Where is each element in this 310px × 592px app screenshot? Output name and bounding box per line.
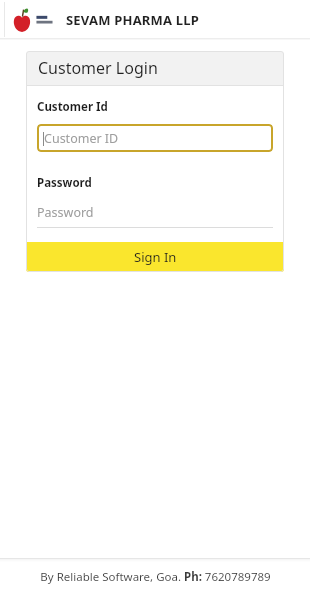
- staticText: SEVAM PHARMA LLP: [66, 11, 199, 29]
- staticText: Password: [37, 204, 94, 221]
- staticText: By Reliable Software, Goa. Ph: 762078978…: [40, 569, 271, 585]
- button[interactable]: Password: [37, 202, 273, 228]
- staticText: Customer Id: [37, 99, 108, 115]
- button[interactable]: Sign In: [26, 242, 284, 272]
- staticText: Customer ID: [44, 130, 119, 147]
- staticText: Sign In: [134, 248, 177, 266]
- button[interactable]: Customer ID: [37, 124, 273, 152]
- staticText: Password: [37, 175, 92, 191]
- staticText: Customer Login: [38, 57, 158, 79]
